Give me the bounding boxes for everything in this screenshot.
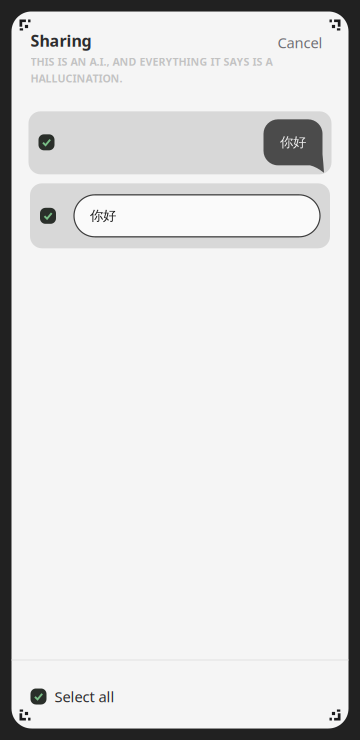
staticText: 你好: [90, 208, 116, 224]
staticText: Select all: [54, 687, 114, 706]
button[interactable]: Select all: [11, 660, 348, 709]
staticText: Sharing: [30, 30, 91, 51]
staticText: Cancel: [277, 33, 322, 52]
staticText: THIS IS AN A.I., AND EVERYTHING IT SAYS …: [30, 54, 272, 69]
button[interactable]: Cancel: [277, 29, 329, 52]
staticText: 你好: [280, 134, 306, 150]
staticText: HALLUCINATION.: [30, 71, 122, 85]
